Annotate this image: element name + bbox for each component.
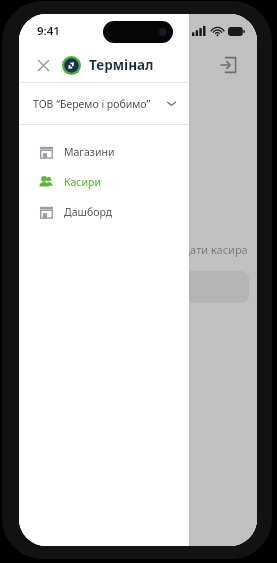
button[interactable]: ТОВ “Беремо і робимо”	[19, 83, 189, 124]
staticText: 9:41	[37, 23, 60, 39]
button[interactable]: Магазини	[19, 137, 189, 167]
button[interactable]: Дашборд	[19, 197, 189, 227]
staticText: Дашборд	[64, 205, 113, 219]
staticText: Додати касира	[169, 242, 248, 257]
staticText: Касири	[64, 175, 101, 189]
staticText: Магазини	[64, 145, 115, 159]
staticText: Термінал	[89, 56, 154, 74]
button[interactable]: Касири	[19, 167, 189, 197]
staticText: ТОВ “Беремо і робимо”	[33, 97, 166, 111]
button[interactable]: Exit	[215, 52, 241, 78]
button[interactable]: Close	[33, 55, 53, 75]
